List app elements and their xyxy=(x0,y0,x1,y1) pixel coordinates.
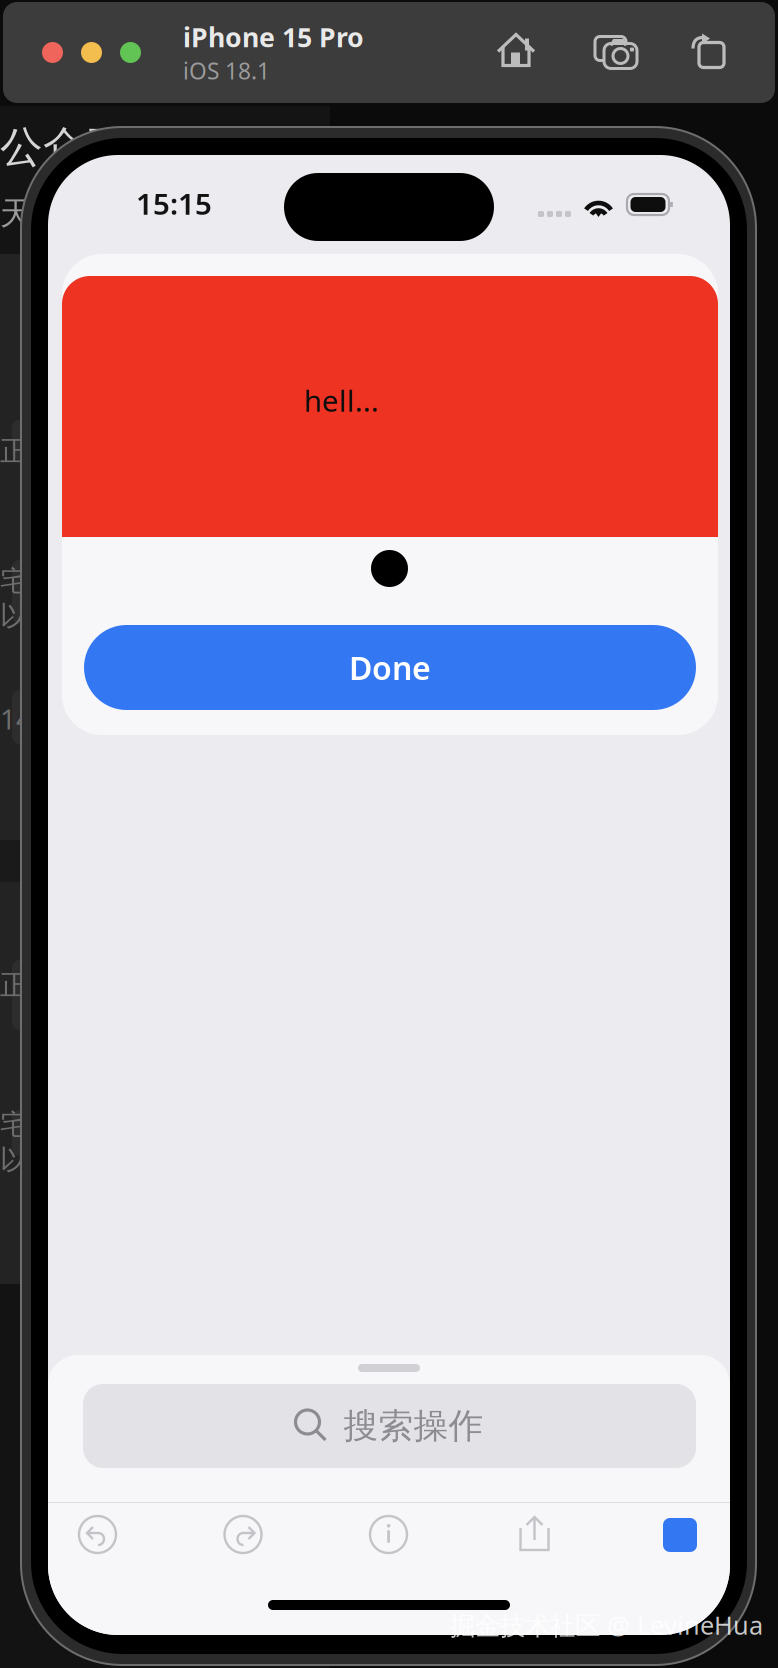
staticText: 15:15 xyxy=(136,184,212,223)
staticText: 正 xyxy=(0,434,28,468)
staticText: 搜索操作 xyxy=(343,1405,483,1447)
staticText: 天 xyxy=(0,194,32,233)
staticText: 掘金技术社区 @ LevineHua xyxy=(450,1608,763,1642)
staticText: hell... xyxy=(304,381,379,420)
staticText: iOS 18.1 xyxy=(183,56,270,86)
button[interactable]: Undo xyxy=(76,1503,120,1567)
button[interactable]: Done xyxy=(84,625,696,710)
button[interactable]: Screenshot xyxy=(594,32,638,72)
staticText: 宅, 以 xyxy=(0,1105,36,1177)
staticText: iPhone 15 Pro xyxy=(183,19,364,55)
button[interactable]: Redo xyxy=(221,1503,265,1567)
staticText: 宅 以 xyxy=(0,564,28,633)
staticText: 14 xyxy=(0,700,32,737)
button[interactable]: Share xyxy=(512,1503,556,1567)
button[interactable]: Rotate xyxy=(691,33,725,71)
staticText: 正绍 xyxy=(0,968,56,1002)
button[interactable]: Details xyxy=(367,1503,411,1567)
button[interactable]: 搜索操作 xyxy=(83,1384,696,1468)
staticText: Done xyxy=(349,646,431,689)
button[interactable]: Run xyxy=(658,1503,702,1567)
staticText: 公众平 xyxy=(0,121,129,173)
button[interactable]: Home xyxy=(496,30,536,74)
